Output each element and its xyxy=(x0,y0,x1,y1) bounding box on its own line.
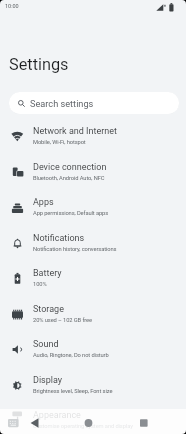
staticText: Network and Internet xyxy=(33,126,117,137)
staticText: Audio, Ringtone, Do not disturb xyxy=(33,352,109,359)
staticText: Brightness level, Sleep, Font size xyxy=(33,388,113,395)
staticText: Storage xyxy=(33,304,64,315)
button[interactable]: Appearance xyxy=(0,402,186,434)
button[interactable]: Notifications xyxy=(0,225,186,261)
staticText: 20% used – 102 GB free xyxy=(33,317,92,324)
staticText: Sound xyxy=(33,339,59,350)
staticText: 100% xyxy=(33,281,47,288)
staticText: Apps xyxy=(33,197,54,208)
staticText: Settings xyxy=(9,55,69,74)
staticText: Display xyxy=(33,375,63,386)
button[interactable]: Storage xyxy=(0,296,186,332)
button[interactable]: Display xyxy=(0,367,186,403)
button[interactable]: Sound xyxy=(0,331,186,367)
staticText: Notification history, conversations xyxy=(33,246,117,253)
staticText: 10:00 xyxy=(5,3,19,9)
button[interactable] xyxy=(135,415,151,431)
staticText: Notifications xyxy=(33,233,85,244)
button[interactable] xyxy=(27,415,43,431)
staticText: Mobile, Wi-Fi, hotspot xyxy=(33,139,86,146)
button[interactable]: Battery xyxy=(0,260,186,296)
staticText: Search settings xyxy=(30,98,94,109)
button[interactable] xyxy=(80,415,96,431)
staticText: Battery xyxy=(33,268,62,279)
button[interactable]: Device connection xyxy=(0,154,186,190)
button[interactable]: Search settings xyxy=(9,92,179,114)
staticText: App permissions, Default apps xyxy=(33,210,109,217)
button[interactable]: Apps xyxy=(0,189,186,225)
button[interactable]: Network and Internet xyxy=(0,118,186,154)
staticText: Customise operating system and display xyxy=(33,423,133,430)
staticText: Bluetooth, Android Auto, NFC xyxy=(33,175,105,182)
staticText: Device connection xyxy=(33,162,107,173)
staticText: Appearance xyxy=(33,410,81,421)
